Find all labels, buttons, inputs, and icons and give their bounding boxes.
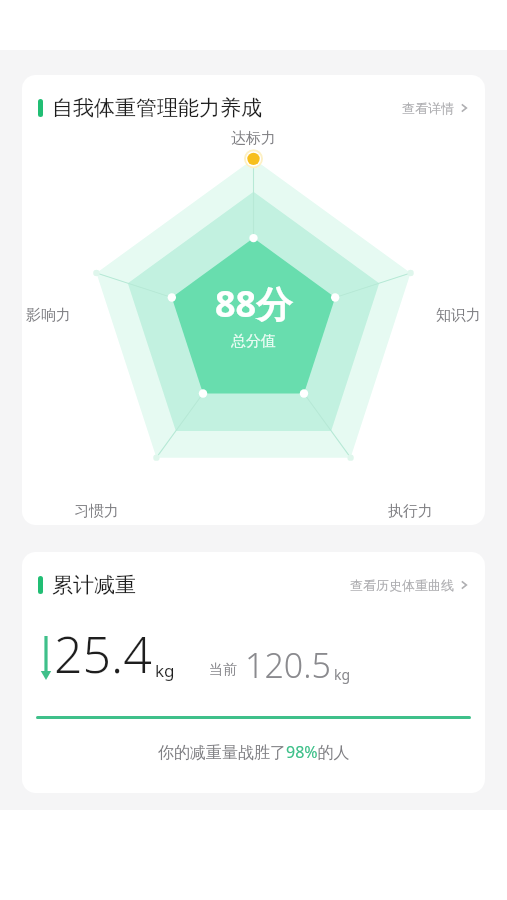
staticText: 影响力 bbox=[26, 306, 71, 325]
staticText: 习惯力 bbox=[74, 502, 119, 521]
button[interactable]: 查看详情 bbox=[400, 96, 471, 120]
staticText: 25.4 bbox=[54, 620, 152, 688]
staticText: kg bbox=[155, 659, 175, 682]
staticText: 自我体重管理能力养成 bbox=[52, 95, 262, 121]
staticText: 查看详情 bbox=[402, 100, 454, 116]
staticText: 120.5 bbox=[245, 642, 331, 688]
staticText: 你的减重量战胜了98%的人 bbox=[158, 741, 350, 763]
staticText: 执行力 bbox=[388, 502, 433, 521]
staticText: 查看历史体重曲线 bbox=[350, 577, 454, 593]
staticText: kg bbox=[334, 665, 351, 684]
staticText: 知识力 bbox=[436, 306, 481, 325]
button[interactable]: 查看历史体重曲线 bbox=[348, 573, 471, 597]
staticText: 总分值 bbox=[231, 332, 276, 351]
staticText: 当前 bbox=[209, 661, 237, 679]
staticText: 88分 bbox=[215, 279, 293, 328]
staticText: 累计减重 bbox=[52, 572, 136, 598]
staticText: 达标力 bbox=[231, 129, 276, 148]
